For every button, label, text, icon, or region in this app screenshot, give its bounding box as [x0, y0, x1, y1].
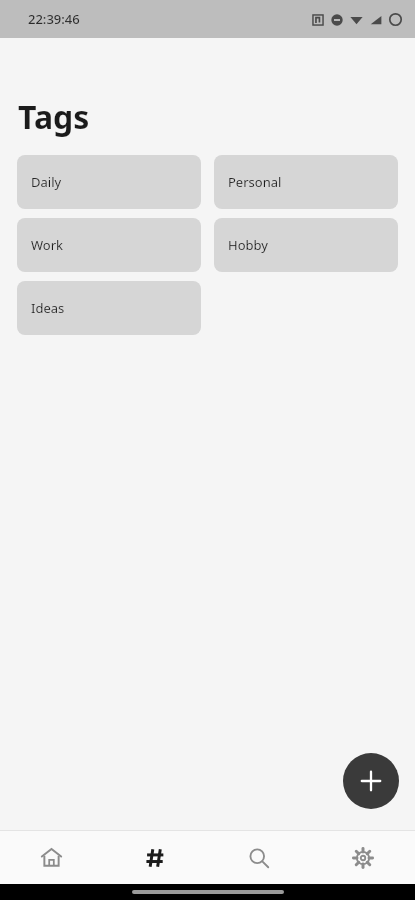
- button[interactable]: Personal: [214, 155, 398, 209]
- staticText: Hobby: [228, 236, 268, 254]
- button[interactable]: Tags: [103, 831, 207, 884]
- button[interactable]: Daily: [17, 155, 201, 209]
- staticText: Ideas: [31, 299, 65, 317]
- button[interactable]: Work: [17, 218, 201, 272]
- button[interactable]: Home: [0, 831, 103, 884]
- staticText: Work: [31, 236, 64, 254]
- staticText: Tags: [18, 95, 90, 139]
- staticText: 22:39:46: [28, 10, 80, 28]
- button[interactable]: Ideas: [17, 281, 201, 335]
- button[interactable]: Hobby: [214, 218, 398, 272]
- button[interactable]: Add tag: [343, 753, 399, 809]
- button[interactable]: Search: [207, 831, 311, 884]
- staticText: Personal: [228, 173, 282, 191]
- staticText: Daily: [31, 173, 62, 191]
- button[interactable]: Settings: [311, 831, 415, 884]
